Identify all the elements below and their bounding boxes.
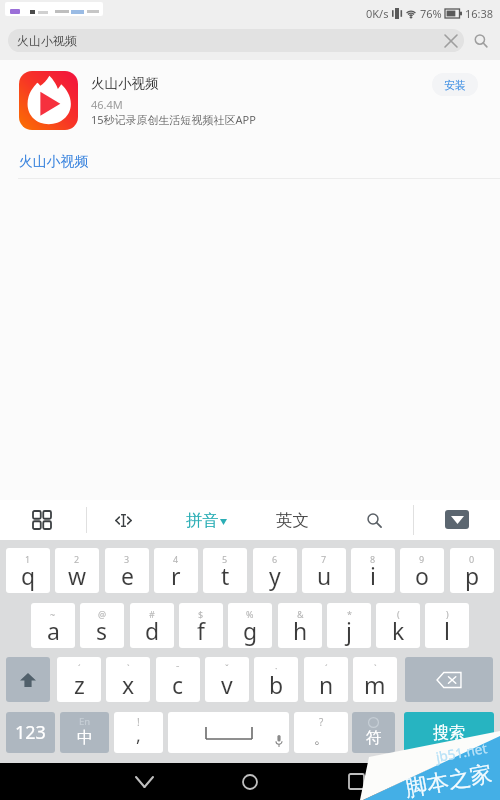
button[interactable]: Clear	[440, 29, 462, 52]
staticText: a	[47, 615, 60, 646]
button[interactable]	[168, 712, 289, 753]
button[interactable]: Recents	[331, 763, 381, 800]
staticText: &	[297, 608, 304, 620]
button[interactable]: ~	[31, 603, 75, 648]
button[interactable]: ?	[294, 712, 348, 753]
button[interactable]: ˋ	[106, 657, 150, 702]
staticText: 英文	[276, 510, 309, 531]
staticText: 76%	[420, 6, 442, 21]
staticText: 中	[77, 728, 93, 748]
button[interactable]: Search	[355, 500, 394, 540]
staticText: $	[198, 608, 204, 620]
staticText: ˊ	[325, 662, 328, 674]
staticText: q	[21, 560, 36, 591]
button[interactable]: ˋ	[353, 657, 397, 702]
staticText: 123	[15, 720, 46, 745]
staticText: h	[293, 615, 308, 646]
button[interactable]: @	[80, 603, 124, 648]
staticText: e	[121, 560, 134, 591]
staticText: x	[122, 669, 135, 700]
button[interactable]: 2	[55, 548, 99, 593]
button[interactable]: !	[114, 712, 163, 753]
button[interactable]: 火山小视频	[0, 71, 500, 130]
staticText: 46.4M	[91, 97, 123, 112]
staticText: s	[96, 615, 108, 646]
button[interactable]: Hide keyboard	[445, 510, 469, 529]
staticText: 6	[272, 553, 278, 565]
button[interactable]: 9	[400, 548, 444, 593]
button[interactable]	[405, 657, 493, 702]
staticText: *	[347, 608, 352, 620]
button[interactable]: Move cursor	[103, 500, 143, 540]
button[interactable]	[6, 657, 50, 702]
button[interactable]: 0	[450, 548, 494, 593]
button[interactable]: $	[179, 603, 223, 648]
button[interactable]: 火山小视频	[8, 29, 464, 52]
staticText: 9	[419, 553, 425, 565]
staticText: k	[392, 615, 405, 646]
button[interactable]: ˉ	[156, 657, 200, 702]
button[interactable]: En	[60, 712, 109, 753]
staticText: 0	[469, 553, 475, 565]
staticText: i	[370, 560, 376, 591]
button[interactable]: 6	[253, 548, 297, 593]
staticText: l	[444, 615, 450, 646]
staticText: %	[246, 608, 254, 620]
button[interactable]: 英文	[268, 500, 317, 540]
staticText: En	[79, 715, 91, 728]
staticText: c	[172, 669, 184, 700]
staticText: d	[145, 615, 160, 646]
button[interactable]: ˇ	[205, 657, 249, 702]
staticText: ˉ	[176, 662, 180, 674]
button[interactable]: 1	[6, 548, 50, 593]
staticText: 符	[366, 728, 382, 748]
button[interactable]: &	[278, 603, 322, 648]
staticText: o	[415, 560, 429, 591]
button[interactable]: )	[425, 603, 469, 648]
button[interactable]: Keyboard layouts	[22, 500, 62, 540]
button[interactable]: ·	[254, 657, 298, 702]
button[interactable]: 7	[302, 548, 346, 593]
button[interactable]: 5	[203, 548, 247, 593]
staticText: 0K/s	[366, 6, 389, 21]
button[interactable]: Hide keyboard	[119, 763, 169, 800]
staticText: r	[171, 560, 181, 591]
staticText: 安装	[444, 78, 466, 92]
staticText: v	[221, 669, 233, 700]
staticText: 脚本之家	[403, 760, 494, 800]
staticText: j	[346, 615, 352, 646]
staticText: !	[137, 715, 140, 729]
staticText: (	[397, 608, 400, 620]
button[interactable]: 拼音	[186, 500, 227, 540]
staticText: jb51.net	[434, 739, 489, 766]
staticText: f	[197, 615, 205, 646]
staticText: 。	[314, 730, 328, 748]
button[interactable]: ˊ	[57, 657, 101, 702]
button[interactable]: 8	[351, 548, 395, 593]
button[interactable]: 123	[6, 712, 55, 753]
button[interactable]: (	[376, 603, 420, 648]
button[interactable]: 符	[352, 712, 395, 753]
staticText: 火山小视频	[91, 75, 159, 92]
button[interactable]: %	[228, 603, 272, 648]
staticText: ·	[275, 662, 278, 674]
button[interactable]: Search	[468, 29, 494, 52]
button[interactable]: ˊ	[304, 657, 348, 702]
button[interactable]: 火山小视频	[0, 144, 500, 178]
button[interactable]: 4	[154, 548, 198, 593]
staticText: b	[269, 669, 284, 700]
staticText: t	[221, 560, 230, 591]
staticText: 2	[74, 553, 80, 565]
staticText: 15秒记录原创生活短视频社区APP	[91, 112, 256, 127]
button[interactable]: 安装	[432, 73, 478, 96]
button[interactable]: *	[327, 603, 371, 648]
button[interactable]: 搜索	[404, 712, 494, 753]
staticText: ˋ	[374, 662, 377, 674]
staticText: 16:38	[465, 6, 494, 21]
staticText: z	[74, 669, 85, 700]
button[interactable]: 3	[105, 548, 149, 593]
button[interactable]: Home	[225, 763, 275, 800]
button[interactable]: #	[130, 603, 174, 648]
staticText: 火山小视频	[17, 33, 77, 48]
staticText: 拼音	[186, 510, 219, 531]
